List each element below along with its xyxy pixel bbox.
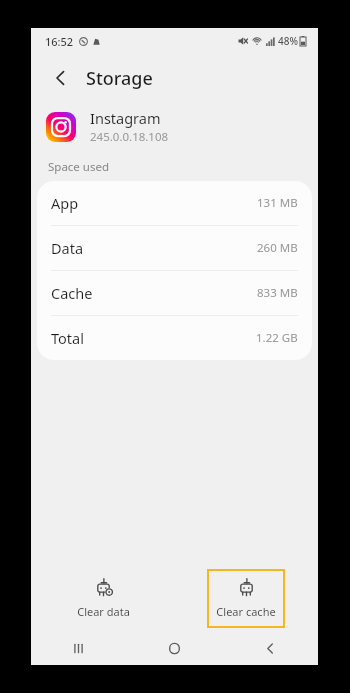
button[interactable]: App [37,181,312,226]
staticText: Total [51,328,84,348]
staticText: App [51,193,79,213]
staticText: Data [51,238,84,258]
button[interactable]: Total [37,316,312,360]
button[interactable]: Data [37,226,312,271]
staticText: 16:52 [45,34,74,49]
button[interactable]: Back [222,631,318,665]
button[interactable]: Back [45,62,77,94]
button[interactable]: Cache [37,271,312,316]
staticText: 48% [278,34,298,48]
staticText: Clear cache [216,604,276,619]
staticText: 245.0.0.18.108 [90,129,169,145]
staticText: 1.22 GB [256,330,298,346]
button[interactable]: Clear cache [207,569,285,628]
button[interactable]: Recents [31,631,126,665]
staticText: Space used [48,159,110,175]
staticText: Clear data [77,604,130,619]
staticText: 833 MB [257,285,298,301]
button[interactable]: Clear data [64,569,142,628]
staticText: 260 MB [257,240,298,256]
button[interactable]: Home [126,631,222,665]
staticText: Instagram [90,108,161,128]
staticText: Storage [86,66,153,91]
staticText: 131 MB [257,195,298,211]
staticText: Cache [51,283,93,303]
